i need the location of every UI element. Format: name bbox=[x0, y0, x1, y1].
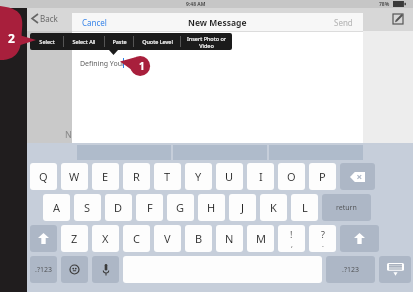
button[interactable]: N bbox=[216, 225, 243, 252]
button[interactable]: .?123 bbox=[326, 256, 375, 283]
button[interactable]: Emoji bbox=[61, 256, 88, 283]
staticText: G bbox=[176, 200, 185, 215]
staticText: R bbox=[133, 169, 140, 184]
button[interactable]: .?123 bbox=[30, 256, 57, 283]
staticText: J bbox=[241, 200, 245, 215]
staticText: .?123 bbox=[35, 265, 52, 275]
button[interactable]: L bbox=[291, 194, 318, 221]
staticText: Paste bbox=[112, 38, 127, 45]
button[interactable]: Cancel bbox=[82, 17, 107, 28]
button[interactable]: Select bbox=[30, 33, 63, 50]
button[interactable]: Z bbox=[61, 225, 88, 252]
staticText: W bbox=[69, 169, 80, 184]
staticText: H bbox=[207, 200, 216, 215]
button[interactable]: E bbox=[92, 163, 119, 190]
staticText: X bbox=[102, 231, 109, 246]
button[interactable]: S bbox=[74, 194, 101, 221]
button[interactable]: K bbox=[260, 194, 287, 221]
button[interactable]: J bbox=[229, 194, 256, 221]
staticText: A bbox=[53, 200, 61, 215]
staticText: E bbox=[102, 169, 109, 184]
button[interactable]: Paste bbox=[105, 33, 133, 50]
staticText: L bbox=[302, 200, 308, 215]
button[interactable]: Y bbox=[185, 163, 212, 190]
staticText: Z bbox=[71, 231, 78, 246]
staticText: Select All bbox=[72, 38, 96, 45]
staticText: I bbox=[259, 169, 263, 184]
button[interactable]: I bbox=[247, 163, 274, 190]
button[interactable]: U bbox=[216, 163, 243, 190]
button[interactable]: Dictation bbox=[92, 256, 119, 283]
staticText: O bbox=[287, 169, 296, 184]
button[interactable]: V bbox=[154, 225, 181, 252]
staticText: F bbox=[147, 200, 153, 215]
button[interactable]: Insert Photo or Video bbox=[181, 33, 232, 50]
staticText: New Message bbox=[188, 17, 247, 29]
staticText: Q bbox=[39, 169, 48, 184]
staticText: V bbox=[164, 231, 171, 246]
button[interactable]: W bbox=[61, 163, 88, 190]
button[interactable]: Compose bbox=[390, 11, 406, 27]
staticText: 9:48 AM bbox=[186, 1, 206, 8]
staticText: Back bbox=[40, 13, 58, 24]
button[interactable]: M bbox=[247, 225, 274, 252]
staticText: 2 bbox=[8, 30, 15, 46]
button[interactable]: Back bbox=[32, 10, 58, 26]
staticText: T bbox=[164, 169, 171, 184]
button[interactable]: R bbox=[123, 163, 150, 190]
button[interactable]: A bbox=[43, 194, 70, 221]
button[interactable]: P bbox=[309, 163, 336, 190]
button[interactable]: Shift bbox=[340, 225, 379, 252]
button[interactable]: ! bbox=[278, 225, 305, 252]
staticText: S bbox=[84, 200, 91, 215]
button[interactable]: ? bbox=[309, 225, 336, 252]
button[interactable]: Quote Level bbox=[134, 33, 180, 50]
staticText: Defining Your M bbox=[80, 59, 134, 69]
button[interactable]: return bbox=[322, 194, 371, 221]
button[interactable]: O bbox=[278, 163, 305, 190]
staticText: , bbox=[291, 240, 293, 250]
staticText: ? bbox=[321, 228, 325, 240]
staticText: . bbox=[322, 240, 324, 250]
button[interactable]: C bbox=[123, 225, 150, 252]
staticText: U bbox=[225, 169, 234, 184]
button[interactable]: Shift bbox=[30, 225, 57, 252]
button[interactable]: Select All bbox=[64, 33, 104, 50]
staticText: N bbox=[65, 128, 72, 140]
button[interactable]: T bbox=[154, 163, 181, 190]
staticText: Y bbox=[195, 169, 202, 184]
staticText: Quote Level bbox=[142, 38, 173, 45]
staticText: 1 bbox=[139, 59, 145, 73]
staticText: C bbox=[133, 231, 140, 246]
staticText: M bbox=[256, 231, 266, 246]
button[interactable]: Backspace bbox=[340, 163, 375, 190]
staticText: K bbox=[270, 200, 277, 215]
staticText: .?123 bbox=[342, 265, 359, 275]
button[interactable]: Q bbox=[30, 163, 57, 190]
button[interactable]: X bbox=[92, 225, 119, 252]
staticText: N bbox=[225, 231, 234, 246]
button[interactable]: H bbox=[198, 194, 225, 221]
staticText: Insert Photo or Video bbox=[181, 35, 232, 49]
staticText: 78% bbox=[379, 1, 390, 8]
button[interactable]: G bbox=[167, 194, 194, 221]
staticText: return bbox=[336, 203, 357, 213]
staticText: ! bbox=[290, 228, 293, 240]
button[interactable]: F bbox=[136, 194, 163, 221]
button[interactable]: Hide keyboard bbox=[379, 256, 411, 283]
staticText: Select bbox=[39, 38, 55, 45]
button[interactable]: Send bbox=[334, 17, 353, 28]
button[interactable]: D bbox=[105, 194, 132, 221]
staticText: D bbox=[114, 200, 123, 215]
staticText: P bbox=[319, 169, 326, 184]
button[interactable]: B bbox=[185, 225, 212, 252]
staticText: B bbox=[195, 231, 203, 246]
